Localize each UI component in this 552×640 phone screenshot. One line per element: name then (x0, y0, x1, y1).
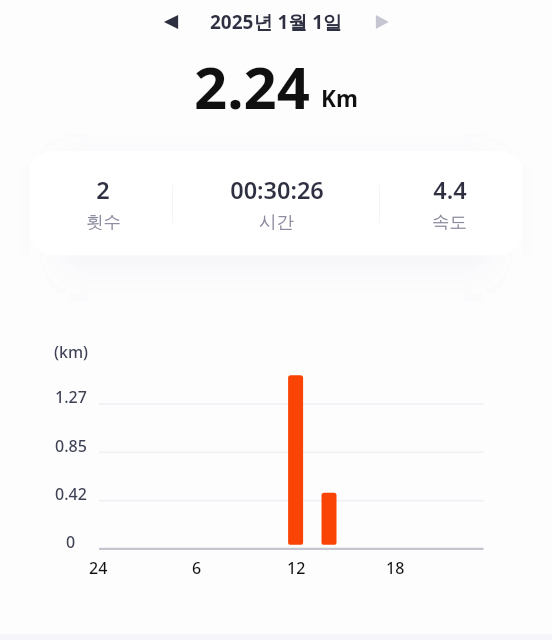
button[interactable]: 00:30:26 (177, 151, 376, 255)
staticText: 00:30:26 (230, 174, 324, 206)
staticText: 2 (96, 174, 110, 206)
staticText: Km (321, 83, 358, 114)
button[interactable]: Next day (365, 5, 399, 39)
button[interactable]: 4.4 (376, 151, 523, 255)
staticText: 24 (89, 557, 108, 579)
staticText: 4.4 (433, 174, 467, 206)
staticText: 0.85 (55, 435, 87, 457)
staticText: 2025년 1월 1일 (210, 9, 343, 35)
staticText: 18 (386, 557, 405, 579)
staticText: 0.42 (55, 483, 87, 505)
staticText: 1.27 (55, 386, 87, 408)
staticText: 횟수 (86, 211, 121, 233)
staticText: 6 (192, 557, 202, 579)
staticText: 0 (66, 531, 76, 553)
staticText: 12 (287, 557, 306, 579)
staticText: (km) (54, 341, 89, 363)
button[interactable]: 2 (29, 151, 177, 255)
staticText: 시간 (259, 211, 294, 233)
staticText: 속도 (432, 211, 467, 233)
staticText: 2.24 (194, 47, 310, 126)
button[interactable]: Previous day (154, 5, 188, 39)
